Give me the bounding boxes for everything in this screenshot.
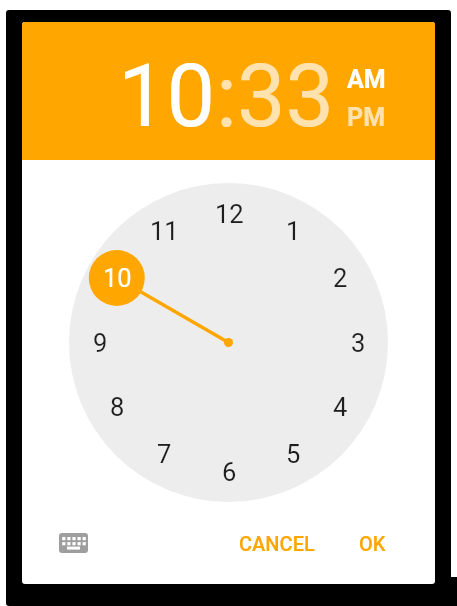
button[interactable]: 7: [0, 0, 44, 34]
staticText: 7: [157, 439, 172, 469]
staticText: 4: [333, 392, 348, 422]
button[interactable]: 12: [0, 0, 44, 34]
button[interactable]: 2: [0, 0, 44, 34]
button[interactable]: [59, 533, 89, 554]
button[interactable]: 9: [0, 0, 44, 34]
button[interactable]: 5: [0, 0, 44, 34]
staticText: 3: [351, 328, 366, 358]
staticText: 8: [110, 392, 125, 422]
button[interactable]: 4: [0, 0, 44, 34]
button[interactable]: CANCEL: [229, 527, 325, 560]
staticText: 5: [286, 439, 301, 469]
staticText: AM: [347, 65, 386, 94]
staticText: PM: [347, 103, 386, 132]
button[interactable]: 6: [0, 0, 44, 34]
button[interactable]: 11: [0, 0, 44, 34]
button[interactable]: PM: [0, 0, 64, 30]
button[interactable]: 10: [118, 46, 216, 147]
staticText: 10: [103, 263, 132, 293]
button[interactable]: 1: [0, 0, 44, 34]
button[interactable]: 3: [0, 0, 44, 34]
staticText: OK: [359, 532, 386, 555]
staticText: 2: [333, 263, 348, 293]
button[interactable]: 8: [0, 0, 44, 34]
button[interactable]: :33: [216, 46, 335, 147]
button[interactable]: AM: [0, 0, 64, 30]
button[interactable]: OK: [348, 527, 397, 560]
staticText: CANCEL: [239, 532, 315, 555]
staticText: 1: [286, 216, 301, 246]
staticText: 11: [150, 216, 179, 246]
button[interactable]: 10: [0, 0, 44, 34]
staticText: 9: [93, 328, 108, 358]
staticText: 6: [222, 457, 237, 487]
staticText: 12: [215, 199, 244, 229]
